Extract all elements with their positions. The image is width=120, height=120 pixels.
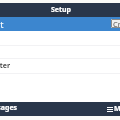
button[interactable]: Messages <box>0 102 18 116</box>
button[interactable]: Account <box>0 17 120 31</box>
staticText: Menu <box>114 104 120 114</box>
button[interactable]: Create <box>111 19 120 28</box>
button[interactable]: Register <box>0 58 120 72</box>
staticText: Create <box>113 19 120 28</box>
staticText: Register <box>0 61 11 71</box>
button[interactable]: Menu <box>107 102 120 116</box>
staticText: Setup <box>51 5 72 15</box>
button[interactable]: Setup <box>0 3 120 17</box>
staticText: Account <box>0 19 4 30</box>
other: Menu <box>107 107 113 112</box>
button[interactable] <box>0 30 120 45</box>
staticText: Messages <box>0 103 18 113</box>
